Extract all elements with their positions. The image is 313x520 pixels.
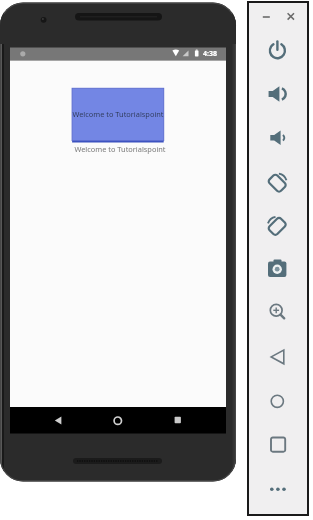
staticText: Welcome to Tutorialspoint bbox=[72, 109, 164, 119]
button[interactable] bbox=[265, 256, 290, 280]
button[interactable] bbox=[44, 408, 72, 433]
button[interactable] bbox=[265, 299, 290, 323]
button[interactable] bbox=[284, 9, 298, 23]
button[interactable] bbox=[104, 408, 132, 433]
button[interactable] bbox=[265, 433, 290, 457]
staticText: Welcome to Tutorialspoint bbox=[74, 144, 166, 154]
button[interactable] bbox=[265, 125, 290, 149]
button[interactable] bbox=[265, 212, 290, 236]
button[interactable] bbox=[265, 477, 290, 501]
button[interactable] bbox=[265, 81, 290, 105]
button[interactable] bbox=[265, 169, 290, 193]
button[interactable]: Welcome to Tutorialspoint bbox=[72, 88, 164, 140]
button[interactable] bbox=[265, 38, 290, 62]
button[interactable] bbox=[265, 344, 290, 368]
button[interactable] bbox=[265, 389, 290, 413]
button[interactable] bbox=[259, 10, 273, 24]
staticText: 4:38 bbox=[203, 49, 217, 59]
button[interactable] bbox=[164, 408, 192, 433]
